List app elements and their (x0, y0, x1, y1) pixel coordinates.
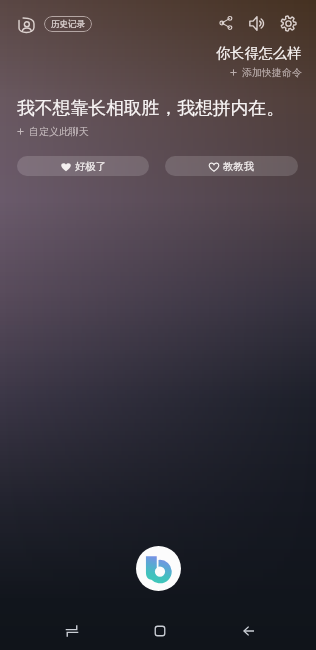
button[interactable]: 历史记录 (44, 16, 92, 32)
button[interactable]: Back (228, 617, 270, 645)
staticText: 添加快捷命令 (242, 66, 302, 79)
button[interactable]: 教教我 (165, 156, 298, 176)
button[interactable]: 自定义此聊天 (17, 124, 89, 139)
staticText: 自定义此聊天 (29, 125, 89, 138)
staticText: 历史记录 (51, 19, 85, 30)
staticText: 教教我 (223, 160, 254, 173)
button[interactable]: 添加快捷命令 (230, 65, 302, 80)
button[interactable]: Profile (13, 12, 39, 38)
staticText: 好极了 (75, 160, 106, 173)
staticText: 我不想靠长相取胜，我想拼内在。 (17, 97, 284, 119)
button[interactable]: 好极了 (17, 156, 149, 176)
button[interactable]: Share (216, 13, 236, 33)
button[interactable]: Settings (278, 13, 298, 33)
button[interactable]: Recent apps (51, 617, 93, 645)
button[interactable]: Volume (247, 13, 267, 33)
staticText: 你长得怎么样 (216, 44, 302, 62)
button[interactable]: Bixby (136, 546, 181, 591)
button[interactable]: Home (139, 617, 181, 645)
